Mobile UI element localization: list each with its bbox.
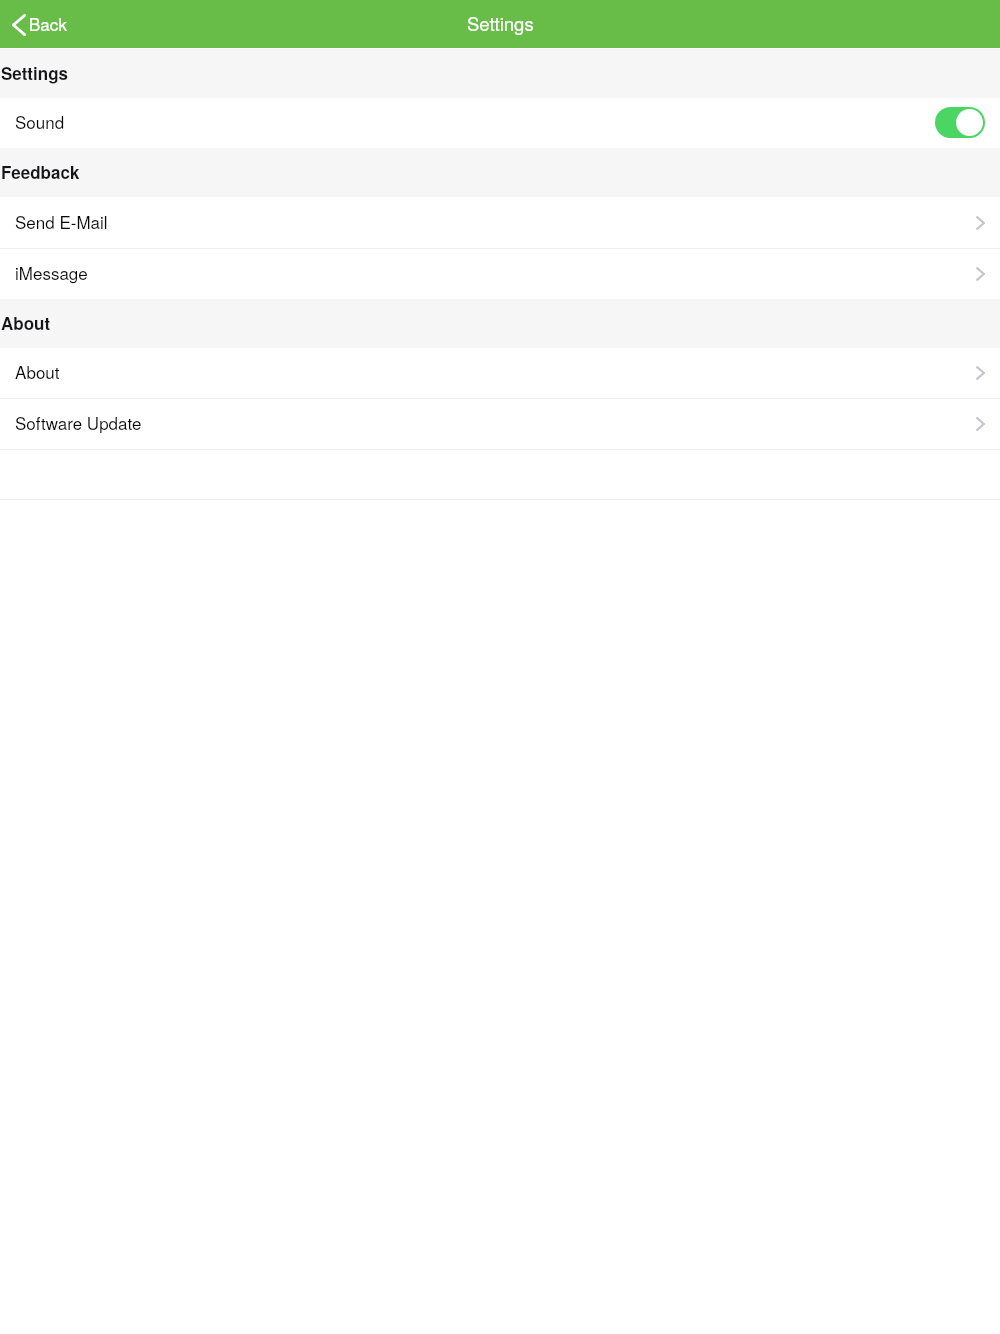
staticText: Send E-Mail [15,209,108,233]
staticText: About [1,311,51,335]
button[interactable]: Send E-Mail [0,197,1000,248]
button[interactable]: Sound on [935,107,985,138]
staticText: Settings [1,61,68,85]
staticText: Settings [467,10,534,36]
staticText: Feedback [1,160,80,184]
staticText: About [15,359,60,383]
button[interactable]: Back [0,6,81,42]
staticText: Software Update [15,410,142,434]
button[interactable]: About [0,348,1000,398]
button[interactable]: Sound [0,98,1000,148]
button[interactable]: iMessage [0,249,1000,299]
staticText: Back [29,11,67,35]
staticText: iMessage [15,260,88,284]
staticText: Sound [15,109,65,133]
button[interactable]: Software Update [0,399,1000,449]
